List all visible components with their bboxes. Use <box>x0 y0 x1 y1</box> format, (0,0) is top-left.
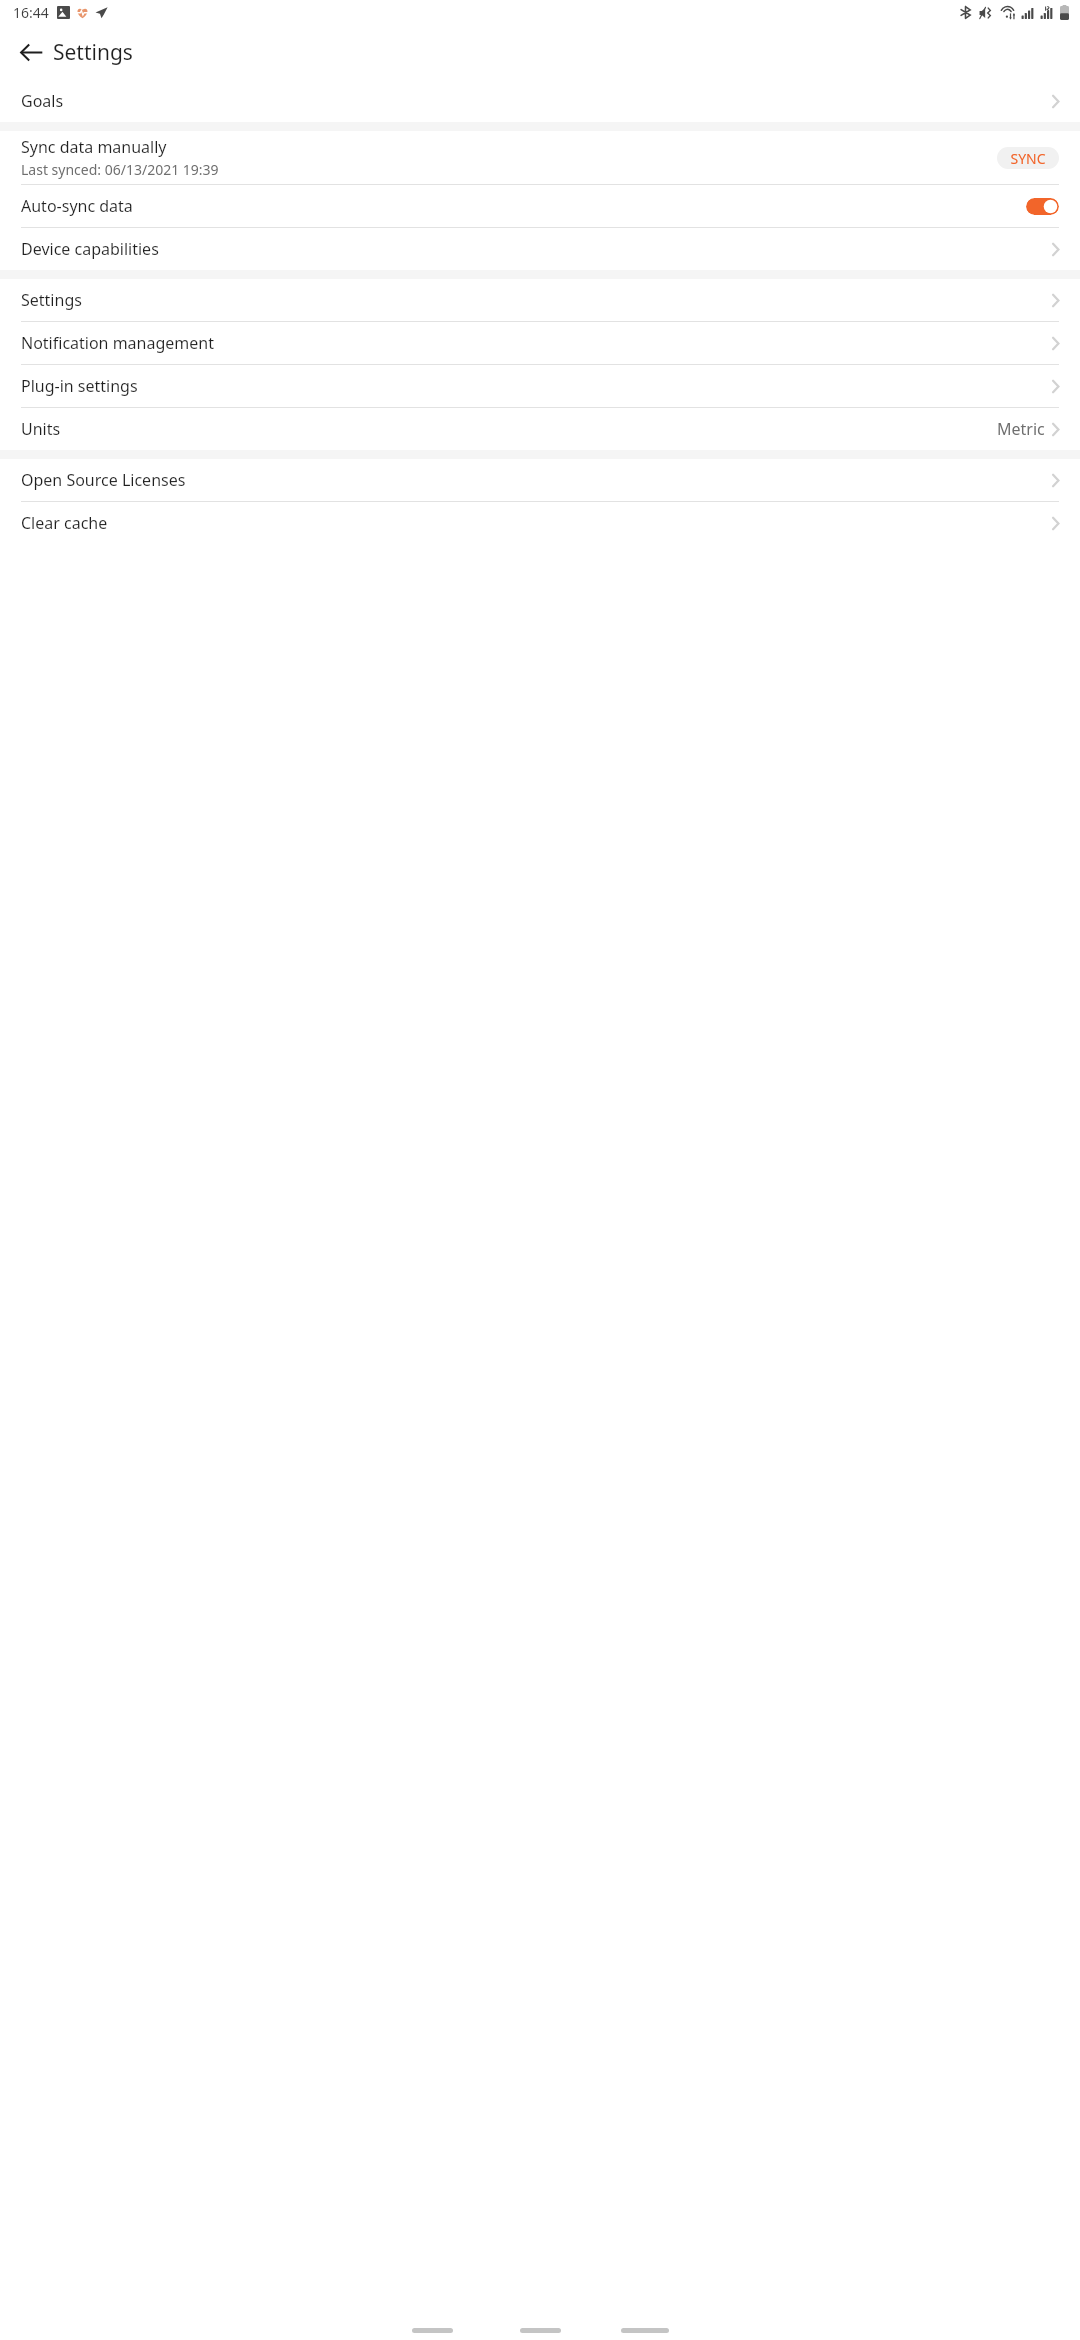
button[interactable]: Back <box>8 29 54 75</box>
button[interactable]: System navigation <box>520 2328 561 2333</box>
staticText: Last synced: 06/13/2021 19:39 <box>21 160 219 179</box>
staticText: SYNC <box>1010 149 1046 168</box>
button[interactable]: Goals <box>0 80 1080 122</box>
staticText: 16:44 <box>13 3 49 22</box>
staticText: Metric <box>997 418 1045 440</box>
staticText: Settings <box>21 289 1052 311</box>
button[interactable]: Notification management <box>0 322 1080 364</box>
staticText: Open Source Licenses <box>21 469 1052 491</box>
button[interactable]: Auto-sync data <box>0 185 1080 227</box>
button[interactable]: Units <box>0 408 1080 450</box>
button[interactable]: System navigation <box>621 2328 669 2333</box>
staticText: Sync data manually <box>21 136 167 158</box>
staticText: Device capabilities <box>21 238 1052 260</box>
button[interactable]: Plug-in settings <box>0 365 1080 407</box>
staticText: Notification management <box>21 332 1052 354</box>
button[interactable]: Open Source Licenses <box>0 459 1080 501</box>
staticText: Settings <box>53 38 133 67</box>
staticText: Clear cache <box>21 512 1052 534</box>
button[interactable]: SYNC <box>997 147 1059 169</box>
button[interactable]: Device capabilities <box>0 228 1080 270</box>
button[interactable]: Auto-sync data toggle <box>1026 198 1059 215</box>
button[interactable]: System navigation <box>412 2328 453 2333</box>
staticText: Goals <box>21 90 1052 112</box>
staticText: Auto-sync data <box>21 195 1026 217</box>
staticText: Plug-in settings <box>21 375 1052 397</box>
staticText: Units <box>21 418 997 440</box>
button[interactable]: Settings <box>0 279 1080 321</box>
button[interactable]: Clear cache <box>0 502 1080 544</box>
button[interactable]: Sync data manually <box>0 131 1080 184</box>
